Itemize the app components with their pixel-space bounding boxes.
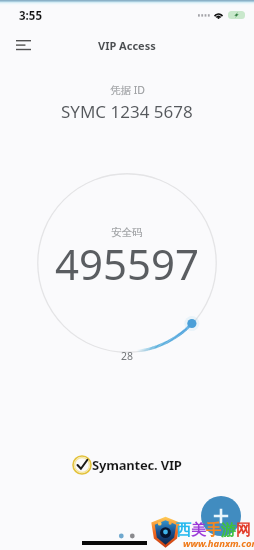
staticText: 凭据 ID [110,83,145,97]
button[interactable]: Add [201,496,241,536]
staticText: www.hanxm.com [183,537,254,550]
button[interactable]: Menu [9,31,37,59]
staticText: 美 [191,521,206,540]
staticText: 3:55 [19,8,42,24]
staticText: 28 [121,349,134,363]
staticText: VIP Access [98,38,156,53]
staticText: SYMC 1234 5678 [61,100,193,123]
staticText: 手 [206,521,221,540]
staticText: Symantec. VIP [92,456,182,474]
staticText: 西 [176,521,191,540]
staticText: 网 [236,521,251,540]
staticText: 安全码 [111,226,143,239]
staticText: 495597 [55,235,200,292]
staticText: 游 [221,521,236,540]
